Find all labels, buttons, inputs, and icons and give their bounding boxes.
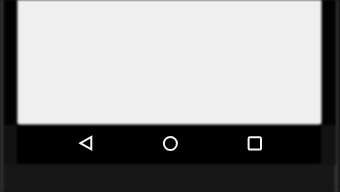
button[interactable]: Home bbox=[163, 136, 178, 151]
button[interactable]: Recent apps bbox=[248, 136, 263, 151]
button[interactable]: Back bbox=[79, 135, 95, 151]
